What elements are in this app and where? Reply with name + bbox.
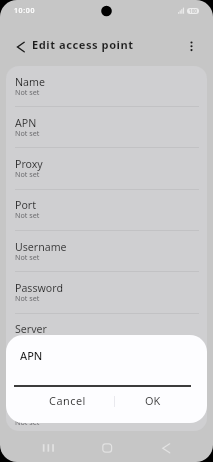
button[interactable]: MMSC — [6, 354, 207, 395]
button[interactable]: Back — [14, 40, 28, 54]
button[interactable]: Password — [6, 272, 207, 313]
staticText: Not set — [15, 128, 40, 138]
staticText: Not set — [15, 169, 40, 179]
button[interactable]: Cancel — [22, 387, 112, 414]
staticText: Password — [15, 281, 63, 295]
button[interactable]: MMS proxy — [6, 396, 207, 431]
button[interactable]: More options — [184, 36, 200, 52]
staticText: APN — [15, 116, 37, 130]
staticText: Server — [15, 322, 47, 336]
staticText: Cancel — [49, 393, 86, 408]
staticText: OK — [145, 393, 161, 408]
staticText: Edit access point — [32, 37, 134, 52]
staticText: Proxy — [15, 157, 43, 171]
staticText: 100 — [189, 8, 198, 14]
button[interactable]: Recents — [33, 437, 63, 459]
button[interactable]: Home — [92, 437, 122, 459]
staticText: Not set — [15, 252, 40, 262]
button[interactable]: APN — [6, 107, 207, 148]
staticText: Name — [15, 75, 45, 89]
staticText: Not set — [15, 334, 40, 344]
staticText: Not set — [15, 87, 40, 97]
button[interactable]: Name — [6, 66, 207, 107]
staticText: Port — [15, 198, 37, 212]
button[interactable]: Back — [151, 437, 181, 459]
button[interactable]: Server — [6, 313, 207, 354]
button[interactable]: Port — [6, 189, 207, 230]
button[interactable]: OK — [107, 387, 198, 414]
staticText: APN — [20, 348, 43, 363]
button[interactable]: Username — [6, 231, 207, 272]
staticText: Not set — [15, 417, 40, 427]
staticText: 10:00 — [14, 6, 36, 16]
staticText: Username — [15, 240, 67, 254]
staticText: Not set — [15, 293, 40, 303]
staticText: Not set — [15, 210, 40, 220]
button[interactable]: Proxy — [6, 148, 207, 189]
